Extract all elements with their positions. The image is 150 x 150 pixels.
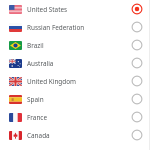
button[interactable]: Spain [0, 90, 150, 108]
staticText: Brazil [27, 41, 44, 50]
staticText: Australia [27, 59, 54, 68]
staticText: United Kingdom [27, 77, 77, 86]
button[interactable]: Australia [0, 54, 150, 72]
button[interactable]: Russian Federation [0, 18, 150, 36]
staticText: Spain [27, 95, 44, 104]
button[interactable]: Canada [0, 126, 150, 144]
button[interactable]: Brazil [0, 36, 150, 54]
staticText: France [27, 113, 48, 122]
staticText: Russian Federation [27, 23, 85, 32]
button[interactable]: United States [0, 0, 150, 18]
button[interactable]: France [0, 108, 150, 126]
button[interactable]: United Kingdom [0, 72, 150, 90]
staticText: United States [27, 5, 68, 14]
staticText: Canada [27, 131, 50, 140]
